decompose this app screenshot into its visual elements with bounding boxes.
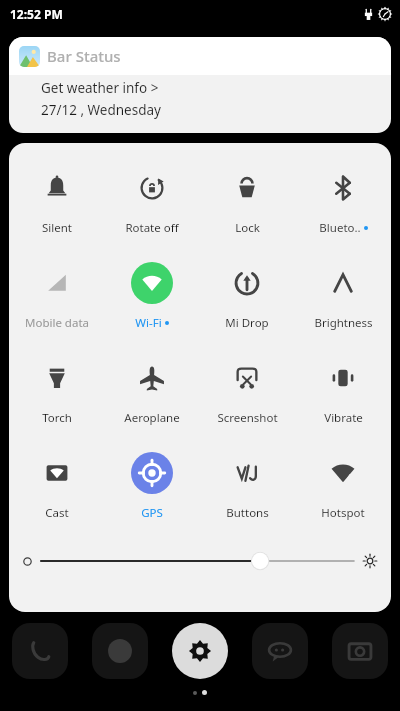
staticText: Mi Drop — [225, 315, 269, 331]
staticText: 12:52 PM — [10, 6, 63, 22]
staticText: Hotspot — [321, 505, 365, 521]
staticText: Cast — [45, 505, 69, 521]
button[interactable]: Blueto.. — [295, 157, 391, 252]
staticText: Lock — [235, 220, 260, 236]
staticText: Rotate off — [125, 220, 179, 236]
staticText: Mobile data — [25, 315, 89, 331]
button[interactable]: Bar Status — [9, 37, 391, 133]
staticText: Aeroplane — [124, 410, 180, 426]
button[interactable]: Aeroplane — [104, 347, 199, 442]
staticText: Blueto.. — [319, 220, 361, 236]
button[interactable]: Torch — [9, 347, 104, 442]
button[interactable]: Messages — [252, 623, 308, 679]
staticText: Screenshot — [217, 410, 278, 426]
staticText: Vibrate — [324, 410, 363, 426]
button[interactable]: Screenshot — [199, 347, 295, 442]
button[interactable]: Lock — [199, 157, 295, 252]
staticText: Buttons — [226, 505, 269, 521]
button[interactable]: Cast — [9, 442, 104, 537]
staticText: Get weather info > — [41, 79, 159, 97]
button[interactable]: Brightness slider — [23, 541, 377, 581]
button[interactable]: Rotate off — [104, 157, 199, 252]
button[interactable]: Settings — [172, 623, 228, 679]
staticText: Brightness — [314, 315, 373, 331]
button[interactable]: Mobile data — [9, 252, 104, 347]
button[interactable]: Vibrate — [295, 347, 391, 442]
staticText: Bar Status — [47, 46, 121, 66]
button[interactable]: Phone — [12, 623, 68, 679]
button[interactable]: Buttons — [199, 442, 295, 537]
button[interactable]: Wi-Fi — [104, 252, 199, 347]
staticText: Silent — [42, 220, 72, 236]
staticText: Wi-Fi — [135, 315, 162, 331]
button[interactable]: Mi Drop — [199, 252, 295, 347]
button[interactable]: GPS — [104, 442, 199, 537]
button[interactable]: Camera — [332, 623, 388, 679]
button[interactable]: Silent — [9, 157, 104, 252]
button[interactable]: Hotspot — [295, 442, 391, 537]
button[interactable]: Browser — [92, 623, 148, 679]
staticText: GPS — [141, 505, 163, 521]
staticText: Torch — [42, 410, 72, 426]
staticText: 27/12 , Wednesday — [41, 101, 161, 119]
button[interactable]: Brightness — [295, 252, 391, 347]
